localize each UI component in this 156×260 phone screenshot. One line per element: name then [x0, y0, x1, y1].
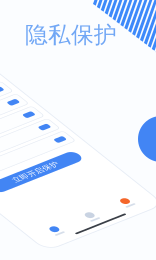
staticText: 隐私保护: [25, 21, 117, 49]
